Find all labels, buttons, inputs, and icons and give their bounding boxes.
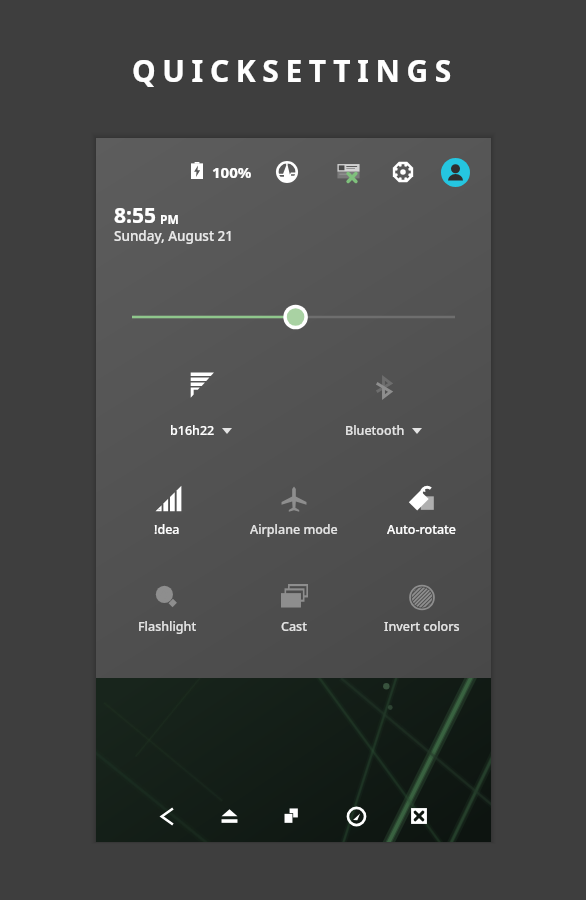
staticText: PM bbox=[160, 211, 179, 227]
button[interactable]: Invert colors bbox=[362, 570, 482, 644]
staticText: Sunday, August 21 bbox=[114, 227, 234, 245]
button[interactable]: User profile bbox=[441, 158, 470, 187]
staticText: !dea bbox=[154, 521, 180, 538]
button[interactable]: Activity bbox=[270, 155, 304, 189]
staticText: Auto-rotate bbox=[387, 521, 457, 538]
button[interactable]: Brightness bbox=[96, 303, 491, 331]
staticText: 100% bbox=[212, 162, 252, 182]
staticText: Cast bbox=[281, 618, 307, 635]
button[interactable]: Close bbox=[398, 795, 440, 837]
staticText: 8:55 bbox=[114, 201, 156, 230]
button[interactable]: Back bbox=[146, 795, 188, 837]
button[interactable]: b16h22 bbox=[141, 358, 261, 448]
button[interactable]: No SIM card bbox=[331, 155, 365, 189]
button[interactable]: Flashlight bbox=[107, 570, 227, 644]
staticText: b16h22 bbox=[170, 422, 215, 439]
staticText: Invert colors bbox=[384, 618, 460, 635]
staticText: QUICKSETTINGS bbox=[132, 50, 458, 91]
staticText: Airplane mode bbox=[250, 521, 338, 538]
button[interactable]: Cast bbox=[234, 570, 354, 644]
button[interactable]: Airplane mode bbox=[234, 472, 354, 547]
button[interactable]: Bluetooth bbox=[323, 363, 443, 448]
button[interactable]: Home bbox=[208, 795, 250, 837]
staticText: Flashlight bbox=[138, 618, 197, 635]
button[interactable]: Auto-rotate bbox=[362, 471, 482, 547]
button[interactable]: Recent apps bbox=[270, 795, 312, 837]
staticText: Bluetooth bbox=[345, 422, 405, 439]
button[interactable]: Assistant bbox=[335, 795, 377, 837]
button[interactable]: Settings bbox=[386, 155, 420, 189]
button[interactable]: !dea bbox=[107, 472, 227, 547]
